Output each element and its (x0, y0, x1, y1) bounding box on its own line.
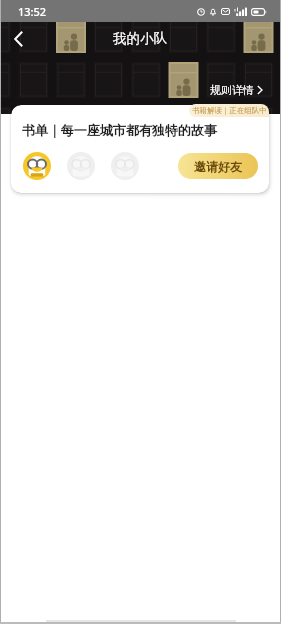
staticText: 13:52 (18, 4, 47, 19)
staticText: 书单｜每一座城市都有独特的故事 (22, 122, 217, 138)
button[interactable]: 邀请好友 (178, 153, 258, 179)
staticText: 书籍解读｜正在组队中 (192, 106, 267, 115)
staticText: 规则详情 (210, 83, 254, 97)
button[interactable]: 队长 (23, 152, 51, 180)
staticText: 我的小队 (113, 30, 167, 47)
button[interactable]: 规则详情 (210, 83, 263, 97)
staticText: 邀请好友 (194, 159, 242, 174)
button[interactable]: Back (2, 23, 34, 55)
